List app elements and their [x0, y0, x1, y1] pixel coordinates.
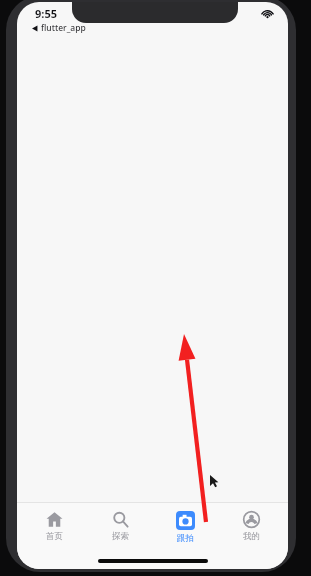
button[interactable]: 首页 [25, 508, 83, 545]
staticText: flutter_app [41, 22, 86, 34]
staticText: 首页 [46, 531, 63, 542]
button[interactable]: flutter_app [31, 22, 86, 34]
other: 探索 [112, 511, 129, 528]
staticText: 9:55 [35, 6, 57, 21]
other: 跟拍 [176, 511, 195, 530]
other: 我的 [243, 511, 260, 528]
other: 首页 [46, 511, 63, 528]
staticText: 我的 [243, 531, 260, 542]
button[interactable]: 探索 [91, 508, 149, 545]
staticText: 跟拍 [177, 533, 194, 544]
button[interactable]: 跟拍 [156, 508, 214, 547]
staticText: 探索 [112, 531, 129, 542]
button[interactable]: 我的 [222, 508, 280, 545]
